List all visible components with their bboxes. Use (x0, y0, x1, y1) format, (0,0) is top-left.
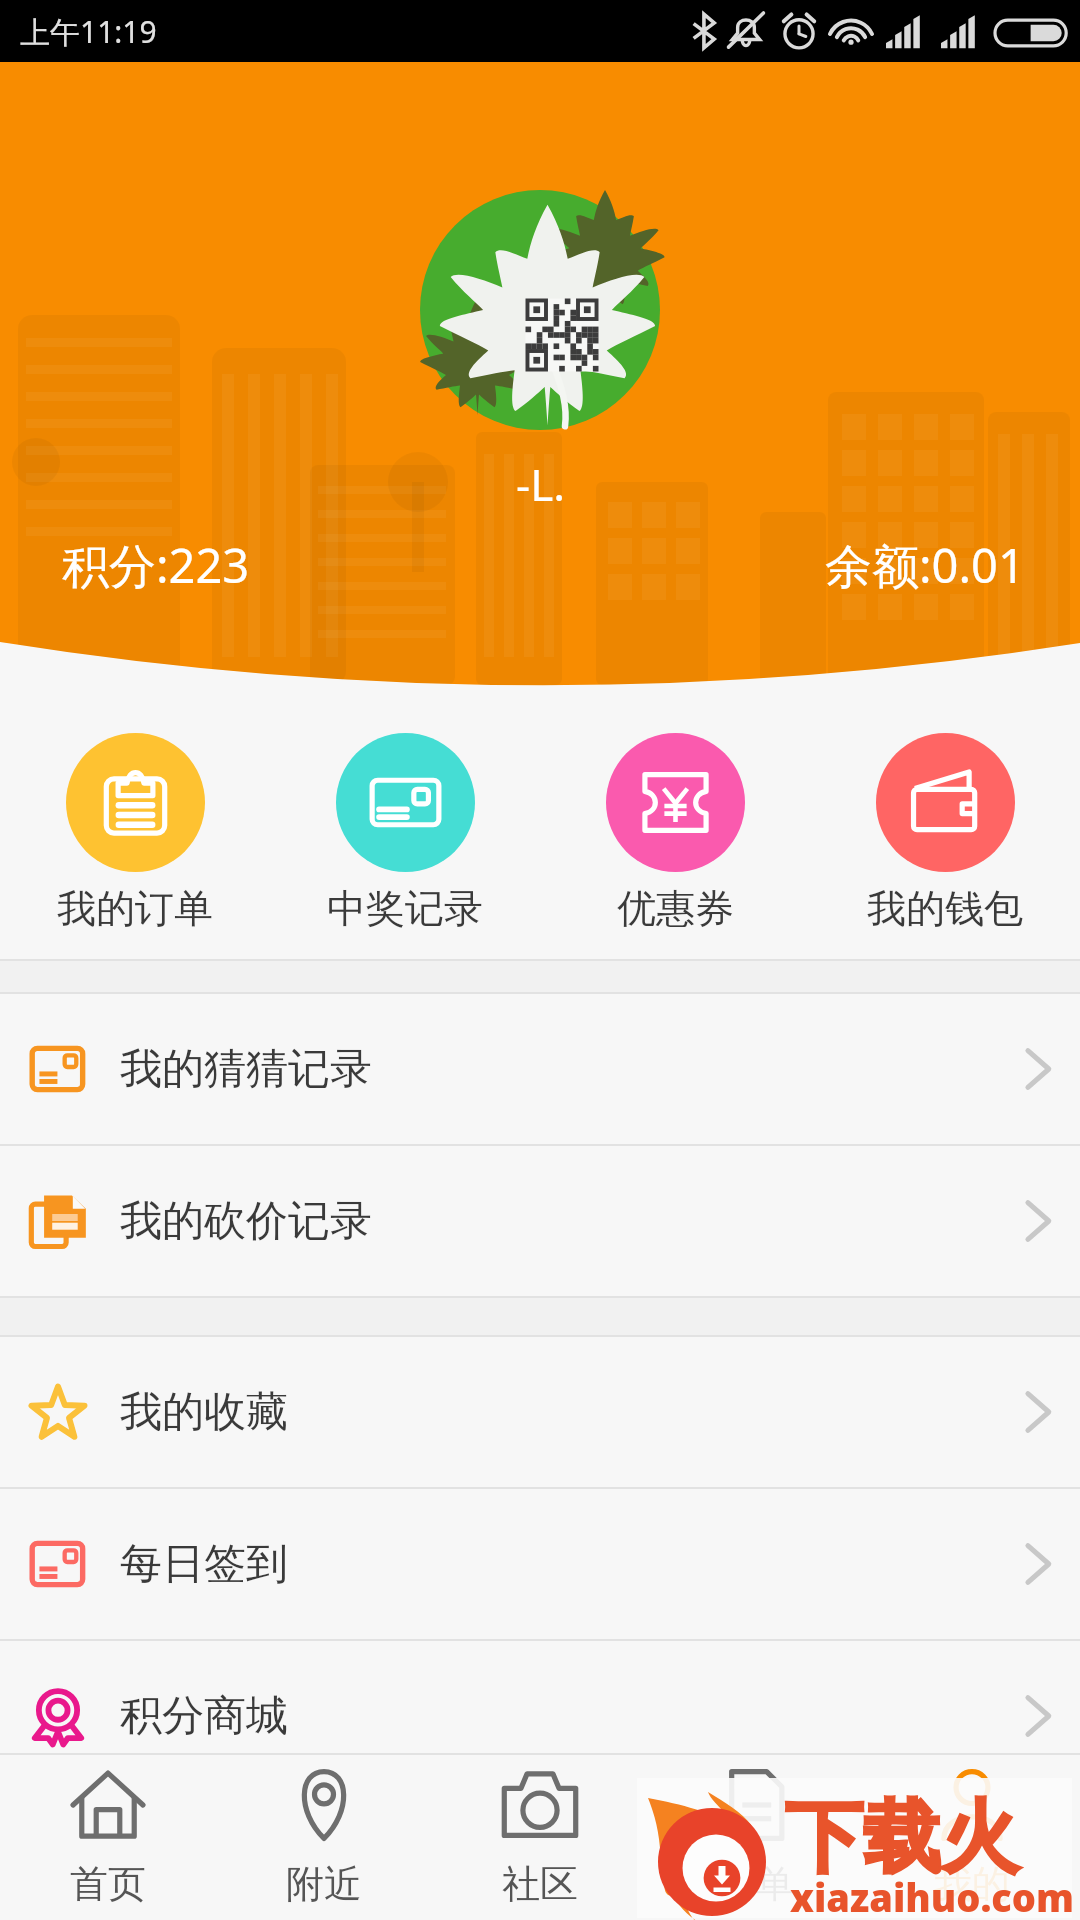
button[interactable]: 我的收藏 (0, 1337, 1080, 1487)
button[interactable]: 我的订单 (0, 685, 270, 959)
button[interactable]: 社区 (432, 1755, 648, 1920)
button[interactable]: 优惠券 (540, 685, 810, 959)
staticText: 我的钱包 (867, 884, 1023, 933)
button[interactable]: 中奖记录 (270, 685, 540, 959)
staticText: 上午11:19 (20, 11, 157, 52)
staticText: 下载火 (785, 1789, 1019, 1887)
staticText: 我的砍价记录 (120, 1195, 372, 1248)
staticText: 我的猜猜记录 (120, 1043, 372, 1096)
staticText: 附近 (286, 1860, 362, 1908)
button[interactable]: 我的钱包 (810, 685, 1080, 959)
staticText: 我的订单 (57, 884, 213, 933)
staticText: 积分商城 (120, 1690, 288, 1743)
button[interactable]: 我的 (864, 1755, 1080, 1920)
staticText: 优惠券 (617, 884, 734, 933)
button[interactable]: 积分商城 (0, 1641, 1080, 1791)
button[interactable]: 首页 (0, 1755, 216, 1920)
button[interactable]: 订单 (648, 1755, 864, 1920)
button[interactable]: Profile avatar (415, 185, 665, 435)
staticText: 首页 (70, 1860, 146, 1908)
staticText: 每日签到 (120, 1538, 288, 1591)
button[interactable]: 我的砍价记录 (0, 1146, 1080, 1296)
staticText: 我的 (934, 1860, 1010, 1908)
staticText: 积分:223 (62, 533, 250, 597)
staticText: 余额:0.01 (825, 533, 1025, 597)
staticText: xiazaihuo.com (790, 1871, 1075, 1920)
button[interactable]: 附近 (216, 1755, 432, 1920)
staticText: 我的收藏 (120, 1386, 288, 1439)
staticText: -L. (516, 454, 566, 514)
button[interactable]: 我的猜猜记录 (0, 994, 1080, 1144)
staticText: 中奖记录 (327, 884, 483, 933)
staticText: 社区 (502, 1860, 578, 1908)
button[interactable]: 每日签到 (0, 1489, 1080, 1639)
staticText: 订单 (718, 1860, 794, 1908)
